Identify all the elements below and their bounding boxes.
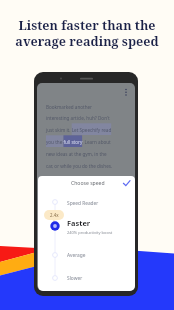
button[interactable]: Choose speed bbox=[38, 176, 135, 190]
staticText: Speed Reader bbox=[67, 200, 99, 207]
staticText: Choose speed bbox=[71, 180, 105, 187]
staticText: Slower bbox=[67, 275, 83, 282]
staticText: Faster bbox=[67, 218, 91, 228]
button[interactable]: Speed Reader bbox=[67, 200, 99, 211]
staticText: 240% productivity boost bbox=[67, 230, 113, 235]
staticText: 2.4x bbox=[50, 212, 59, 218]
button[interactable]: Faster bbox=[67, 218, 113, 235]
button[interactable]: More options bbox=[121, 87, 131, 97]
button[interactable]: Slower bbox=[67, 275, 83, 286]
button[interactable]: Average bbox=[67, 252, 86, 263]
staticText: Average bbox=[67, 252, 86, 259]
staticText: Listen faster than the average reading s… bbox=[0, 17, 174, 50]
button[interactable]: Confirm bbox=[121, 178, 132, 189]
staticText: Bookmarked another interesting article, … bbox=[46, 104, 113, 182]
